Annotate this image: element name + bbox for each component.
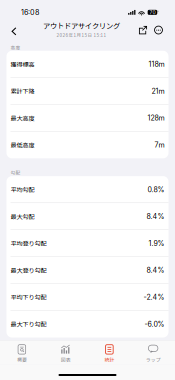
button[interactable]: 概要 xyxy=(0,340,44,364)
staticText: 8.4% xyxy=(146,266,164,274)
staticText: ラップ xyxy=(146,356,161,363)
staticText: 7m xyxy=(154,141,164,149)
staticText: -6.0% xyxy=(144,320,164,328)
staticText: 平均登り勾配 xyxy=(10,239,46,248)
staticText: 8.4% xyxy=(146,212,164,221)
staticText: 最大下り勾配 xyxy=(10,320,46,328)
staticText: 図表 xyxy=(61,356,71,363)
staticText: 統計 xyxy=(104,356,114,363)
staticText: -2.4% xyxy=(143,293,164,301)
staticText: 累計下降 xyxy=(10,87,34,96)
button[interactable]: 戻る xyxy=(8,22,20,41)
staticText: 平均下り勾配 xyxy=(10,293,46,302)
staticText: アウトドアサイクリング xyxy=(43,20,120,31)
button[interactable]: ラップ xyxy=(131,340,175,364)
staticText: 概要 xyxy=(17,356,27,363)
staticText: 高度 xyxy=(10,44,20,51)
staticText: 16:08 xyxy=(21,8,39,17)
staticText: 獲得標高 xyxy=(10,60,34,69)
staticText: 最大登り勾配 xyxy=(10,266,46,275)
button[interactable]: 図表 xyxy=(44,340,88,364)
staticText: 勾配 xyxy=(10,169,20,176)
staticText: 118m xyxy=(148,60,164,68)
staticText: 70 xyxy=(149,9,155,15)
staticText: 2026年1月15日 15:11 xyxy=(56,32,106,38)
staticText: 最大勾配 xyxy=(10,212,34,221)
staticText: 128m xyxy=(147,114,164,122)
staticText: 最大高度 xyxy=(10,114,34,122)
staticText: 21m xyxy=(151,87,164,95)
button[interactable]: 共有 xyxy=(137,21,148,42)
button[interactable]: その他 xyxy=(153,21,164,42)
button[interactable]: 統計 xyxy=(87,340,131,364)
staticText: 1.9% xyxy=(148,239,164,248)
staticText: 0.8% xyxy=(147,185,164,194)
staticText: 最低高度 xyxy=(10,140,34,149)
staticText: 平均勾配 xyxy=(10,185,34,194)
